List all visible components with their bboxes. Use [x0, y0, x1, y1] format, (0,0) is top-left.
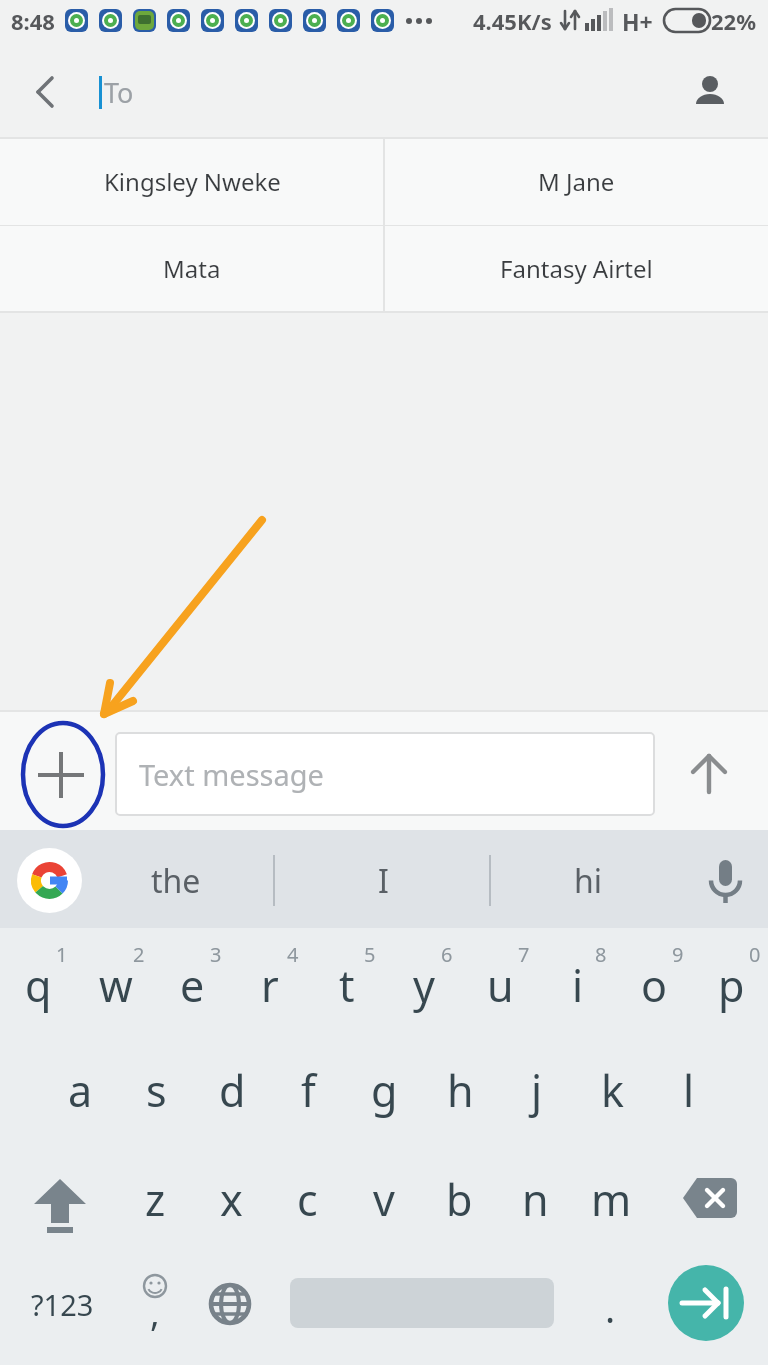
button[interactable]: I: [347, 849, 419, 913]
button[interactable]: [687, 752, 731, 796]
staticText: H+: [622, 6, 653, 37]
staticText: t: [339, 956, 355, 1015]
button[interactable]: t: [305, 942, 388, 1028]
staticText: q: [25, 956, 52, 1015]
staticText: h: [447, 1061, 474, 1120]
button[interactable]: n: [494, 1156, 577, 1242]
button[interactable]: m: [570, 1156, 653, 1242]
button[interactable]: [694, 68, 726, 108]
staticText: 4.45K/s: [473, 6, 552, 36]
button[interactable]: [208, 1282, 252, 1326]
button[interactable]: x: [190, 1156, 273, 1242]
staticText: g: [371, 1061, 398, 1120]
staticText: 1: [56, 941, 68, 968]
staticText: 5: [364, 941, 376, 968]
staticText: r: [261, 956, 279, 1015]
button[interactable]: [17, 848, 82, 913]
button[interactable]: ?123: [0, 1275, 140, 1333]
staticText: x: [220, 1170, 243, 1229]
staticText: Mata: [163, 252, 221, 285]
button[interactable]: b: [418, 1156, 501, 1242]
staticText: ,: [150, 1288, 160, 1337]
button[interactable]: a: [39, 1047, 122, 1133]
staticText: Fantasy Airtel: [500, 252, 653, 285]
button[interactable]: f: [267, 1047, 350, 1133]
button[interactable]: Kingsley Nweke: [0, 138, 384, 225]
staticText: 22%: [711, 6, 757, 36]
button[interactable]: s: [115, 1047, 198, 1133]
staticText: M Jane: [538, 165, 615, 198]
button[interactable]: [36, 750, 86, 800]
button[interactable]: i: [536, 942, 619, 1028]
staticText: z: [145, 1170, 166, 1229]
button[interactable]: [30, 76, 58, 108]
button[interactable]: v: [342, 1156, 425, 1242]
staticText: f: [301, 1061, 316, 1120]
staticText: 0: [749, 941, 761, 968]
staticText: I: [378, 859, 389, 903]
staticText: 2: [133, 941, 145, 968]
button[interactable]: c: [266, 1156, 349, 1242]
staticText: n: [522, 1170, 549, 1229]
button[interactable]: To: [104, 60, 304, 124]
staticText: o: [641, 956, 668, 1015]
button[interactable]: h: [419, 1047, 502, 1133]
button[interactable]: j: [495, 1047, 578, 1133]
staticText: 8: [595, 941, 607, 968]
button[interactable]: .: [571, 1270, 649, 1346]
staticText: 7: [518, 941, 530, 968]
staticText: 9: [672, 941, 684, 968]
button[interactable]: u: [459, 942, 542, 1028]
button[interactable]: y: [382, 942, 465, 1028]
staticText: Kingsley Nweke: [104, 165, 281, 198]
button[interactable]: Fantasy Airtel: [384, 225, 768, 312]
staticText: w: [99, 956, 133, 1015]
staticText: e: [180, 956, 205, 1015]
staticText: 3: [210, 941, 222, 968]
staticText: a: [68, 1061, 93, 1120]
staticText: .: [605, 1282, 616, 1334]
staticText: u: [487, 956, 514, 1015]
staticText: b: [446, 1170, 473, 1229]
button[interactable]: q: [0, 942, 80, 1028]
staticText: y: [413, 956, 435, 1015]
button[interactable]: [34, 1179, 86, 1233]
staticText: 4: [287, 941, 299, 968]
staticText: ?123: [31, 1285, 94, 1324]
staticText: s: [146, 1061, 167, 1120]
staticText: m: [591, 1170, 632, 1229]
button[interactable]: p: [690, 942, 768, 1028]
staticText: 8:48: [11, 6, 55, 36]
button[interactable]: Mata: [0, 225, 384, 312]
staticText: p: [718, 956, 745, 1015]
button[interactable]: k: [571, 1047, 654, 1133]
button[interactable]: l: [647, 1047, 730, 1133]
button[interactable]: the: [108, 849, 244, 913]
button[interactable]: d: [191, 1047, 274, 1133]
button[interactable]: [668, 1265, 744, 1341]
staticText: 6: [441, 941, 453, 968]
button[interactable]: hi: [536, 849, 640, 913]
staticText: j: [531, 1061, 543, 1120]
button[interactable]: [138, 1272, 172, 1330]
button[interactable]: z: [114, 1156, 197, 1242]
button[interactable]: r: [228, 942, 311, 1028]
button[interactable]: [705, 858, 747, 906]
button[interactable]: M Jane: [384, 138, 768, 225]
staticText: v: [373, 1170, 395, 1229]
staticText: the: [151, 859, 201, 903]
button[interactable]: w: [74, 942, 157, 1028]
staticText: l: [683, 1061, 695, 1120]
staticText: Text message: [139, 755, 324, 794]
staticText: k: [601, 1061, 624, 1120]
button[interactable]: e: [151, 942, 234, 1028]
button[interactable]: g: [343, 1047, 426, 1133]
staticText: To: [104, 74, 134, 111]
staticText: i: [572, 956, 584, 1015]
staticText: c: [297, 1170, 318, 1229]
button[interactable]: Text message: [115, 732, 655, 816]
button[interactable]: [683, 1176, 737, 1220]
staticText: hi: [574, 859, 603, 903]
button[interactable]: o: [613, 942, 696, 1028]
